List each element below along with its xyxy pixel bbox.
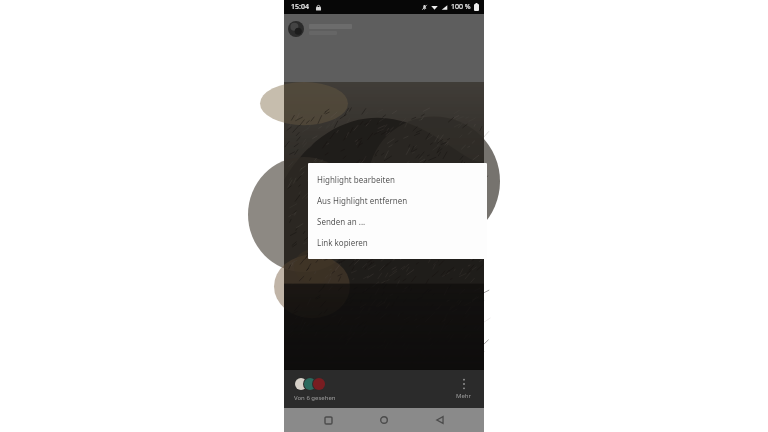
button[interactable]: Aus Highlight entfernen [308, 190, 487, 211]
staticText: Von 6 gesehen [294, 394, 336, 402]
staticText: Senden an ... [317, 216, 366, 227]
staticText: Mehr [456, 392, 472, 400]
button[interactable]: Highlight bearbeiten [308, 169, 487, 190]
button[interactable]: Mehr [456, 378, 472, 400]
staticText: Aus Highlight entfernen [317, 195, 408, 206]
staticText: 15:04 [291, 2, 309, 12]
button[interactable] [288, 21, 352, 37]
button[interactable]: Senden an ... [308, 211, 487, 232]
button[interactable]: Link kopieren [308, 232, 487, 253]
button[interactable]: Home [372, 408, 396, 432]
staticText: Link kopieren [317, 237, 368, 248]
button[interactable]: Von 6 gesehen [294, 377, 340, 402]
button[interactable]: Back [428, 408, 452, 432]
staticText: 100 % [451, 2, 471, 12]
staticText: Highlight bearbeiten [317, 174, 395, 185]
button[interactable]: Recent apps [316, 408, 340, 432]
